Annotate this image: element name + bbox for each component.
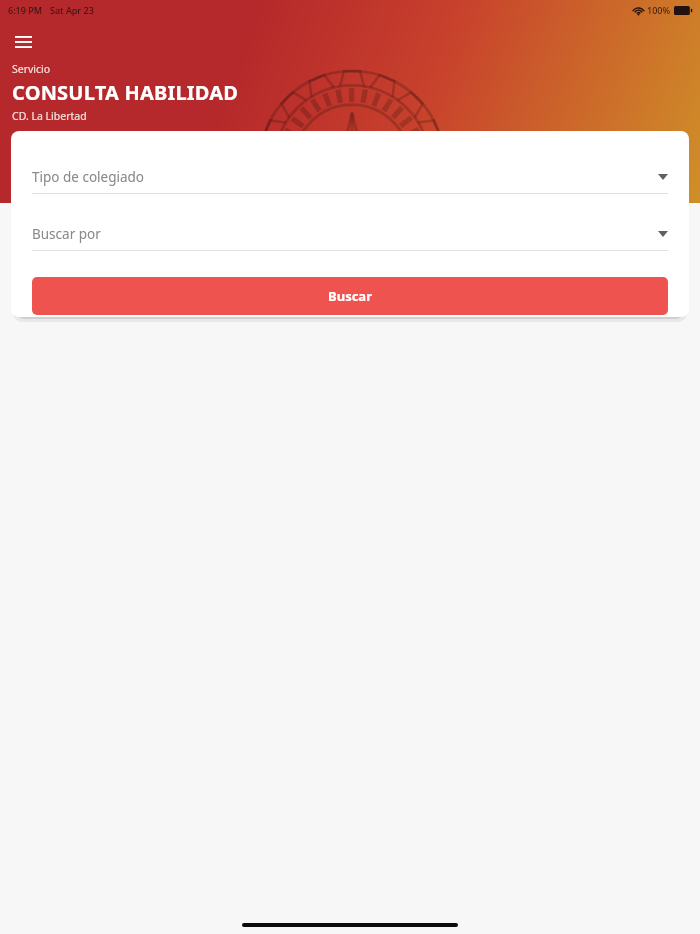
- staticText: CONSULTA HABILIDAD: [12, 79, 239, 106]
- button[interactable]: Open navigation menu: [7, 26, 39, 58]
- staticText: Tipo de colegiado: [32, 168, 658, 186]
- button[interactable]: Buscar por: [32, 225, 668, 251]
- staticText: Sat Apr 23: [50, 4, 94, 16]
- staticText: Buscar por: [32, 225, 658, 243]
- button[interactable]: Tipo de colegiado: [32, 168, 668, 194]
- button[interactable]: Buscar: [32, 277, 668, 315]
- staticText: Buscar: [328, 287, 372, 305]
- staticText: 6:19 PM: [8, 4, 42, 16]
- staticText: 100%: [647, 4, 671, 16]
- staticText: Servicio: [12, 62, 51, 76]
- staticText: CD. La Libertad: [12, 109, 87, 123]
